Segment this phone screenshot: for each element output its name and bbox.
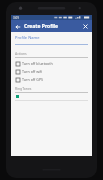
staticText: Turn off GPS [22,77,44,82]
button[interactable]: Profile Name [15,35,88,45]
button[interactable]: Close [81,22,90,31]
staticText: Turn off bluetooth [22,61,53,66]
staticText: Profile Name [15,35,40,40]
staticText: Turn off wifi [22,69,43,74]
staticText: Create Profile [24,23,59,30]
staticText: Actions [15,51,27,56]
button[interactable]: Turn off wifi [15,69,88,74]
button[interactable]: Turn off GPS [15,77,88,82]
button[interactable]: Back [13,22,22,31]
staticText: 3:09 [13,16,19,20]
staticText: RingTones [15,86,32,91]
button[interactable]: Turn off bluetooth [15,61,88,66]
